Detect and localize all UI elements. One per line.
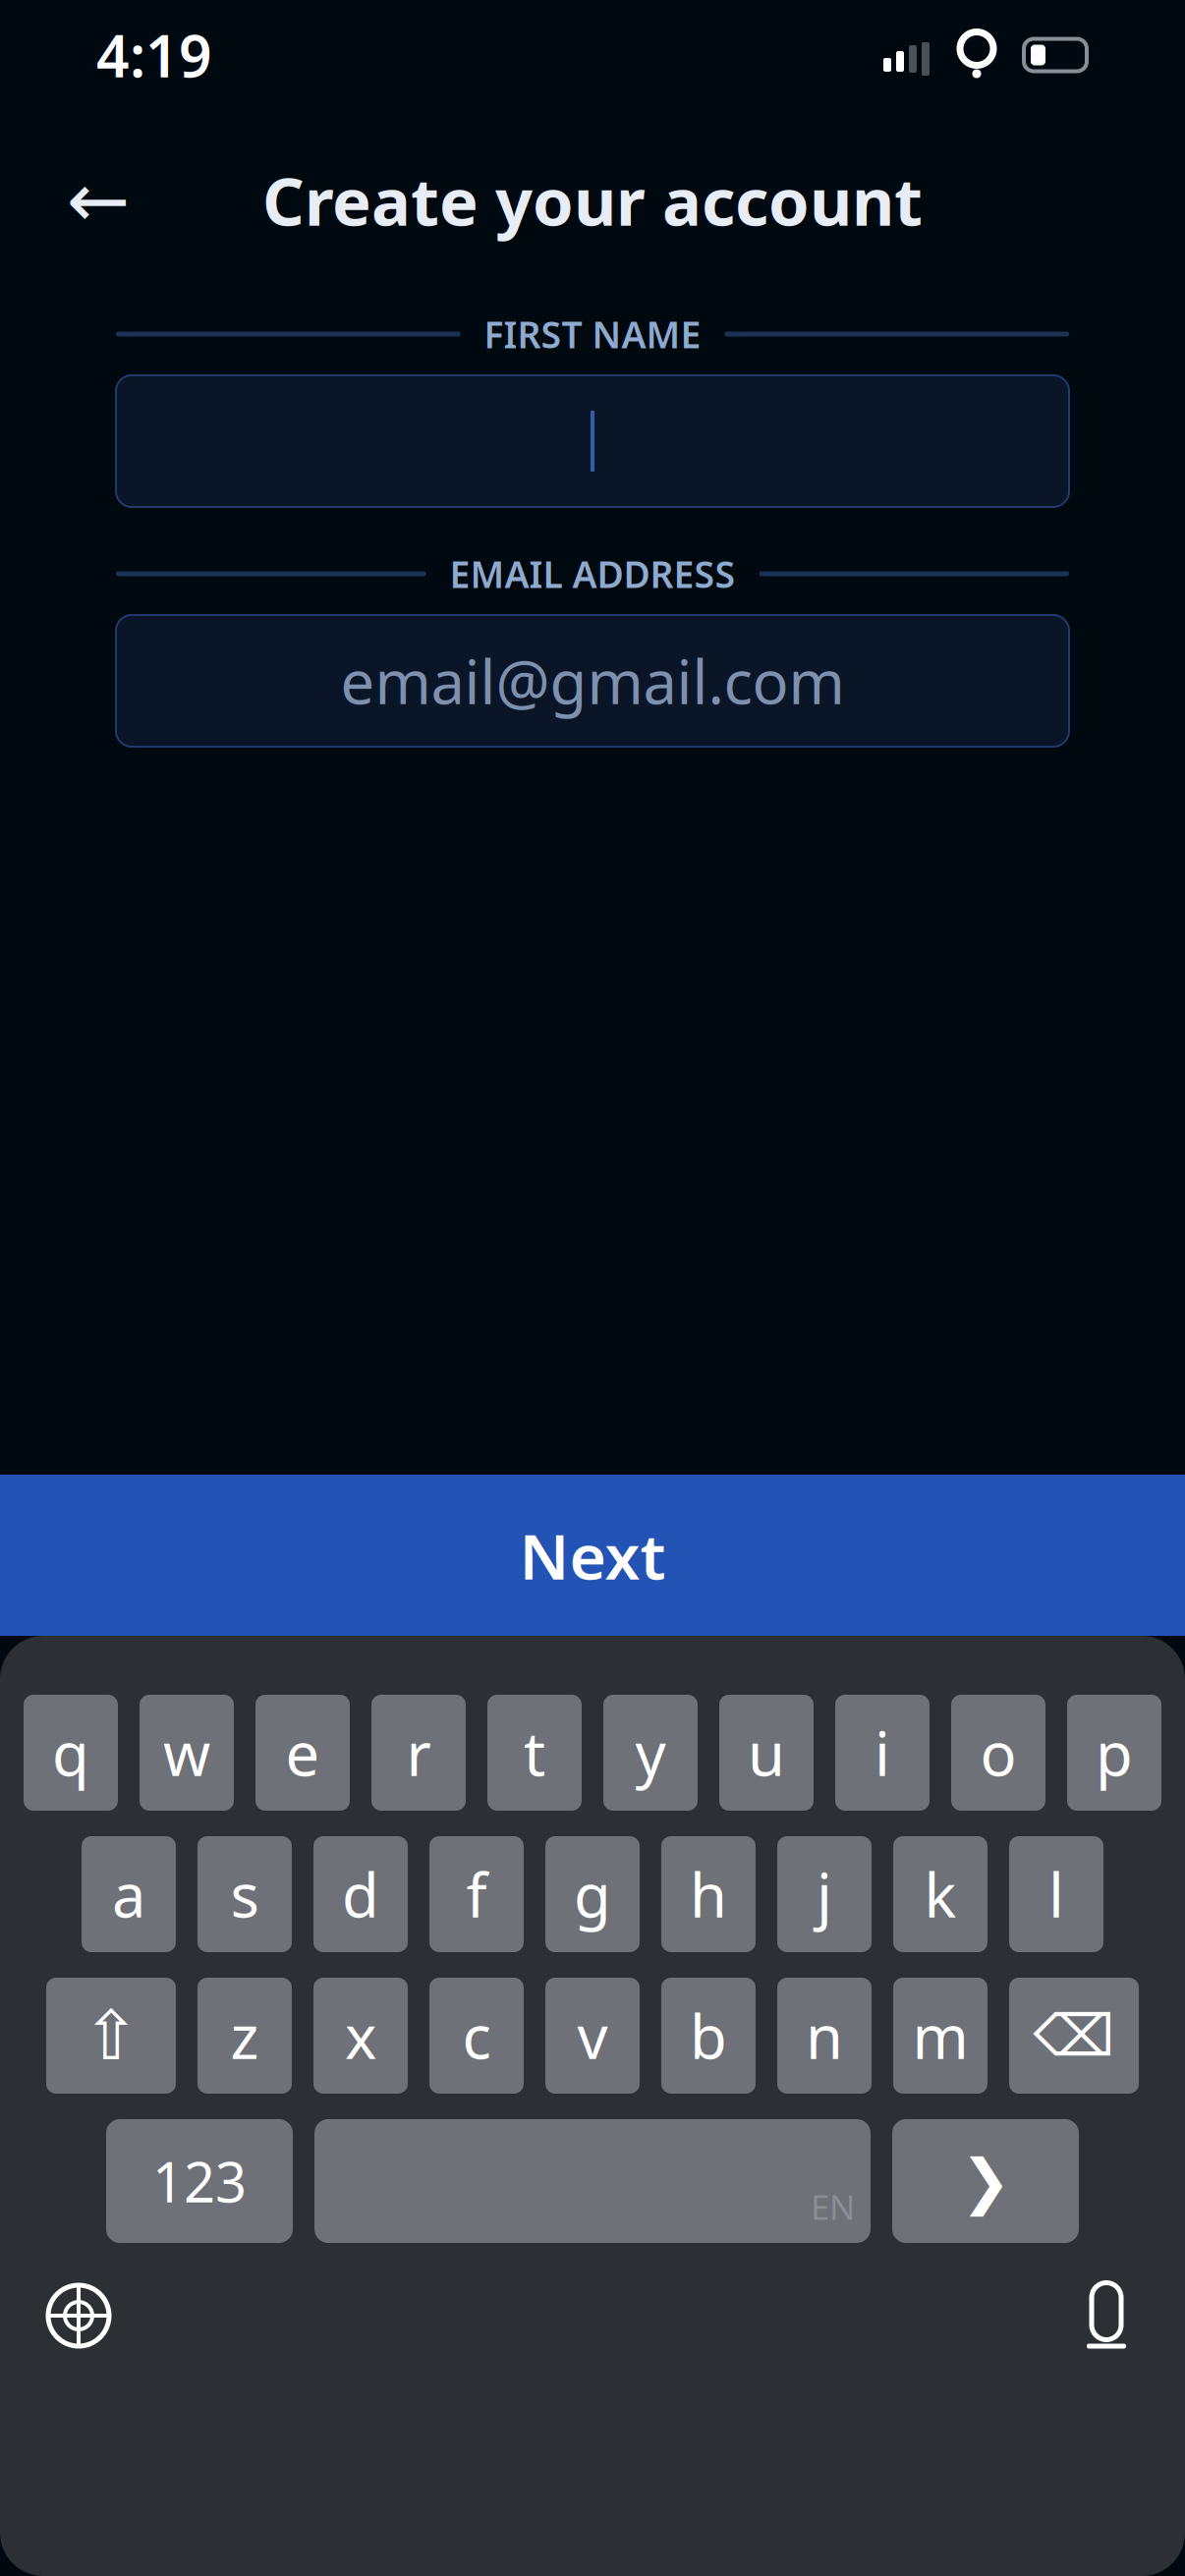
button[interactable]: f <box>429 1836 524 1952</box>
button[interactable]: n <box>777 1978 872 2094</box>
button[interactable]: b <box>661 1978 756 2094</box>
staticText: a <box>112 1854 145 1934</box>
staticText: ← <box>66 157 130 244</box>
staticText: FIRST NAME <box>484 310 701 358</box>
button[interactable]: i <box>835 1695 930 1811</box>
staticText: j <box>817 1854 832 1934</box>
staticText: EN <box>811 2184 855 2229</box>
button[interactable]: d <box>313 1836 408 1952</box>
button[interactable]: z <box>197 1978 292 2094</box>
staticText: o <box>980 1713 1016 1793</box>
button[interactable]: ❯ <box>892 2119 1079 2243</box>
button[interactable]: v <box>545 1978 640 2094</box>
button[interactable]: Shift <box>46 1978 176 2094</box>
staticText: 4:19 <box>96 17 212 93</box>
button[interactable]: Next keyboard <box>29 2267 128 2365</box>
staticText: p <box>1096 1713 1133 1793</box>
staticText: ❯ <box>960 2147 1011 2215</box>
button[interactable]: s <box>197 1836 292 1952</box>
button[interactable]: x <box>313 1978 408 2094</box>
staticText: v <box>577 1996 608 2076</box>
button[interactable]: m <box>893 1978 987 2094</box>
staticText: q <box>52 1713 89 1793</box>
button[interactable]: c <box>429 1978 524 2094</box>
button[interactable]: g <box>545 1836 640 1952</box>
button[interactable]: email@gmail.com <box>116 615 1069 747</box>
button[interactable]: u <box>719 1695 814 1811</box>
button[interactable] <box>116 375 1069 507</box>
staticText: i <box>875 1713 890 1793</box>
staticText: w <box>163 1713 210 1793</box>
button[interactable]: a <box>82 1836 176 1952</box>
staticText: y <box>635 1713 666 1793</box>
button[interactable]: q <box>24 1695 118 1811</box>
staticText: r <box>406 1713 431 1793</box>
button[interactable]: l <box>1009 1836 1103 1952</box>
button[interactable]: Delete <box>1009 1978 1139 2094</box>
staticText: m <box>912 1996 968 2076</box>
button[interactable]: Next <box>0 1475 1185 1636</box>
staticText: g <box>574 1854 611 1934</box>
staticText: d <box>342 1854 379 1934</box>
staticText: s <box>230 1854 259 1934</box>
staticText: EMAIL ADDRESS <box>450 549 735 598</box>
button[interactable]: h <box>661 1836 756 1952</box>
staticText: t <box>524 1713 545 1793</box>
button[interactable]: 123 <box>106 2119 293 2243</box>
button[interactable]: t <box>487 1695 582 1811</box>
staticText: l <box>1048 1854 1064 1934</box>
staticText: n <box>806 1996 843 2076</box>
staticText: Next <box>519 1513 666 1597</box>
staticText: e <box>285 1713 320 1793</box>
staticText: k <box>924 1854 957 1934</box>
button[interactable]: Dictate <box>1057 2267 1156 2365</box>
button[interactable]: r <box>371 1695 466 1811</box>
button[interactable]: Back <box>49 151 147 250</box>
button[interactable]: j <box>777 1836 872 1952</box>
button[interactable]: o <box>951 1695 1045 1811</box>
staticText: u <box>748 1713 785 1793</box>
button[interactable]: y <box>603 1695 698 1811</box>
staticText: z <box>230 1996 259 2076</box>
staticText: 123 <box>152 2145 247 2218</box>
staticText: c <box>462 1996 491 2076</box>
button[interactable]: p <box>1067 1695 1161 1811</box>
staticText: ⇧ <box>83 1997 140 2074</box>
staticText: ⌫ <box>1033 2003 1115 2068</box>
staticText: x <box>345 1996 376 2076</box>
staticText: h <box>690 1854 727 1934</box>
button[interactable]: e <box>255 1695 350 1811</box>
staticText: Create your account <box>262 157 923 244</box>
staticText: email@gmail.com <box>340 641 845 721</box>
staticText: b <box>690 1996 727 2076</box>
staticText: f <box>466 1854 487 1934</box>
button[interactable]: w <box>140 1695 234 1811</box>
button[interactable]: Space <box>314 2119 871 2243</box>
button[interactable]: k <box>893 1836 987 1952</box>
